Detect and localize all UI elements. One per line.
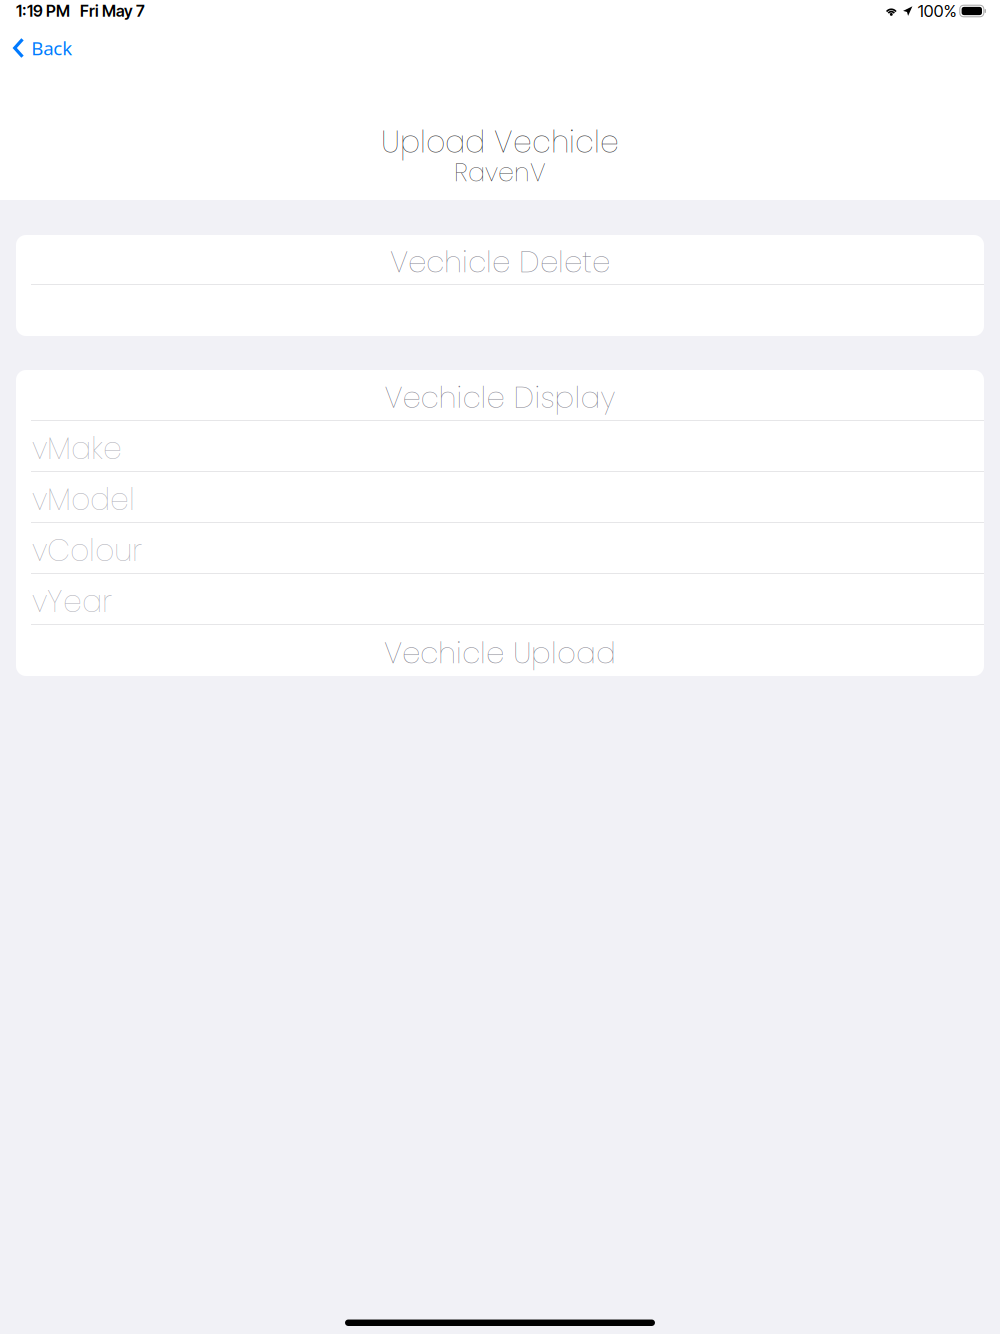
staticText: Fri May 7 [80, 1, 145, 21]
staticText: Vechicle Upload [384, 632, 616, 674]
staticText: vColour [32, 529, 142, 571]
staticText: Vechicle Display [384, 377, 615, 418]
staticText: Back [31, 36, 72, 60]
staticText: Upload Vechicle [381, 121, 619, 163]
button[interactable]: vModel [16, 472, 984, 522]
staticText: vModel [32, 478, 135, 520]
button[interactable]: vColour [16, 523, 984, 573]
staticText: 100% [918, 1, 957, 21]
staticText: RavenV [454, 155, 546, 190]
staticText: vMake [32, 427, 122, 469]
button[interactable]: Back [0, 27, 82, 69]
staticText: vYear [32, 580, 112, 622]
button[interactable]: vMake [16, 421, 984, 471]
button[interactable]: Vechicle Display [16, 370, 984, 420]
button[interactable]: Vechicle Delete [16, 235, 984, 284]
staticText: Vechicle Delete [390, 241, 610, 283]
staticText: 1:19 PM [16, 1, 70, 21]
button[interactable]: Vechicle Upload [16, 625, 984, 676]
